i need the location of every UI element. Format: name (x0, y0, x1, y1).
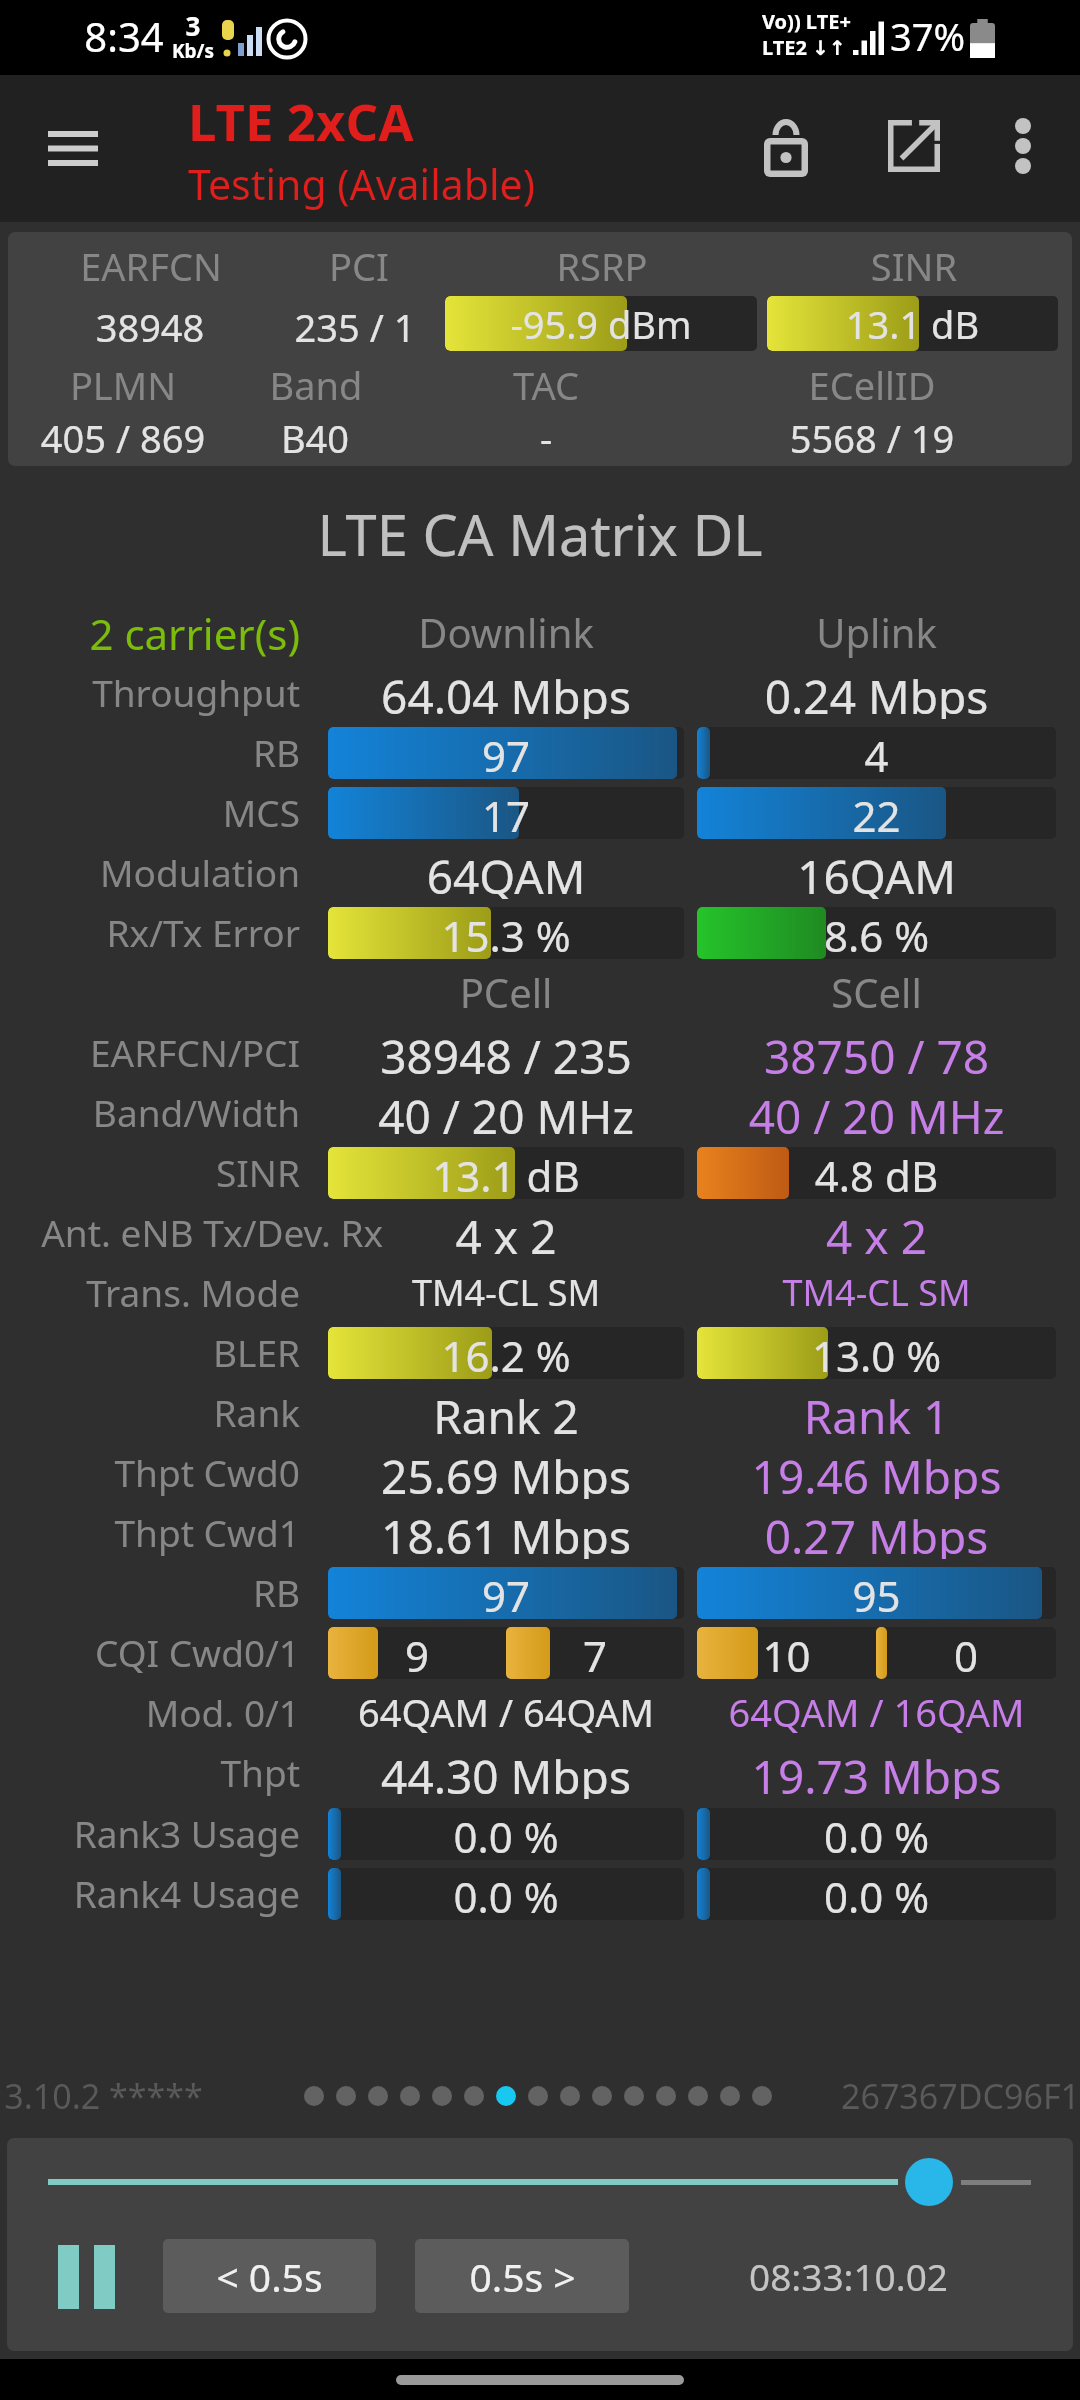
staticText: 18.61 Mbps (328, 1505, 684, 1559)
staticText: Rx/Tx Error (0, 907, 300, 957)
staticText: 97 (328, 727, 684, 779)
staticText: 5568 / 19 (742, 412, 1002, 464)
staticText: Rank3 Usage (0, 1808, 300, 1858)
staticText: 235 / 1 (235, 301, 475, 353)
button[interactable]: Lock screen (744, 75, 828, 222)
staticText: 38948 / 235 (328, 1025, 684, 1079)
staticText: Uplink (697, 605, 1056, 659)
staticText: 8.6 % (697, 907, 1056, 959)
staticText: Downlink (328, 605, 684, 659)
staticText: PLMN (8, 359, 243, 411)
staticText: 22 (697, 787, 1056, 839)
staticText: Kb/s (168, 38, 218, 64)
staticText: 267367DC96F1 (841, 2073, 1080, 2119)
staticText: Modulation (0, 847, 300, 897)
staticText: 37% (890, 10, 966, 62)
staticText: EARFCN (31, 240, 271, 292)
staticText: Rank 2 (328, 1385, 684, 1439)
staticText: Band/Width (0, 1087, 300, 1137)
staticText: 10 (697, 1627, 876, 1679)
staticText: B40 (195, 412, 435, 464)
staticText: 08:33:10.022 (741, 2251, 956, 2301)
staticText: PCI (239, 240, 479, 292)
staticText: CQI Cwd0/1 (0, 1627, 300, 1677)
staticText: 7 (506, 1627, 684, 1679)
staticText: Thpt Cwd1 (0, 1507, 300, 1557)
button[interactable]: More options (988, 75, 1060, 222)
staticText: 19.73 Mbps (697, 1745, 1056, 1799)
staticText: 64QAM (328, 845, 684, 899)
staticText: LTE CA Matrix DL (0, 496, 1080, 572)
staticText: 19.46 Mbps (697, 1445, 1056, 1499)
staticText: 4 x 2 (328, 1205, 684, 1259)
staticText: TM4-CL SM (697, 1268, 1056, 1317)
staticText: - (426, 412, 666, 464)
staticText: 13.1 dB (328, 1147, 684, 1199)
staticText: Rank 1 (697, 1385, 1056, 1439)
staticText: 44.30 Mbps (328, 1745, 684, 1799)
button[interactable]: Open in new window (866, 75, 960, 222)
staticText: RB (0, 727, 300, 777)
staticText: 64QAM / 16QAM (697, 1686, 1056, 1738)
staticText: 4.8 dB (697, 1147, 1056, 1199)
staticText: 15.3 % (328, 907, 684, 959)
staticText: 97 (328, 1567, 684, 1619)
staticText: ECellID (752, 359, 992, 411)
staticText: LTE2 ↓↑ (762, 34, 854, 61)
staticText: SINR (794, 240, 1034, 292)
button[interactable]: Seek (905, 2158, 953, 2206)
staticText: 38948 (30, 301, 270, 353)
staticText: 405 / 869 (8, 412, 253, 464)
staticText: 64QAM / 64QAM (328, 1686, 684, 1738)
staticText: 0.5s > (469, 2250, 576, 2303)
staticText: 2 carrier(s) (0, 605, 300, 659)
staticText: Ant. eNB Tx/Dev. Rx (0, 1207, 383, 1257)
staticText: EARFCN/PCI (0, 1027, 300, 1077)
staticText: PCell (328, 965, 684, 1019)
staticText: 4 x 2 (697, 1205, 1056, 1259)
staticText: RSRP (482, 240, 722, 292)
staticText: BLER (0, 1327, 300, 1377)
staticText: Thpt Cwd0 (0, 1447, 300, 1497)
staticText: 0.0 % (697, 1868, 1056, 1920)
staticText: Band (196, 359, 436, 411)
staticText: < 0.5s (216, 2250, 323, 2303)
button[interactable]: Navigation menu (23, 75, 123, 222)
button[interactable]: < 0.5s (163, 2239, 376, 2313)
staticText: 25.69 Mbps (328, 1445, 684, 1499)
staticText: LTE 2xCA (188, 86, 414, 155)
staticText: 13.1 dB (767, 298, 1058, 350)
staticText: 9 (328, 1627, 506, 1679)
staticText: 16.2 % (328, 1327, 684, 1379)
staticText: 0.0 % (697, 1808, 1056, 1860)
staticText: 16QAM (697, 845, 1056, 899)
staticText: 3.10.2 ***** (4, 2073, 203, 2119)
staticText: RB (0, 1567, 300, 1617)
staticText: Trans. Mode (0, 1267, 300, 1317)
staticText: 13.0 % (697, 1327, 1056, 1379)
staticText: MCS (0, 787, 300, 837)
staticText: 0.0 % (328, 1868, 684, 1920)
staticText: SINR (0, 1147, 300, 1197)
staticText: Thpt (0, 1747, 300, 1797)
staticText: TAC (426, 359, 666, 411)
staticText: Throughput (0, 667, 300, 717)
button[interactable]: Pause (45, 2236, 127, 2318)
staticText: 0.27 Mbps (697, 1505, 1056, 1559)
staticText: 17 (328, 787, 684, 839)
staticText: 64.04 Mbps (328, 665, 684, 719)
staticText: Testing (Available) (188, 156, 535, 212)
staticText: 40 / 20 MHz (328, 1085, 684, 1139)
staticText: 38750 / 78 (697, 1025, 1056, 1079)
staticText: 8:34 (84, 9, 164, 63)
staticText: SCell (697, 965, 1056, 1019)
staticText: 0 (876, 1627, 1056, 1679)
staticText: 0.0 % (328, 1808, 684, 1860)
staticText: 40 / 20 MHz (697, 1085, 1056, 1139)
staticText: Mod. 0/1 (0, 1687, 300, 1737)
staticText: 3 (168, 8, 218, 38)
button[interactable]: 0.5s > (415, 2239, 629, 2313)
staticText: TM4-CL SM (328, 1268, 684, 1317)
staticText: Rank (0, 1387, 300, 1437)
staticText: 95 (697, 1567, 1056, 1619)
